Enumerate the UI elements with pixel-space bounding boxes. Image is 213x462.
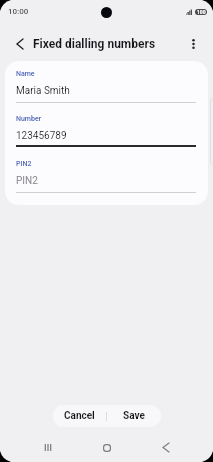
staticText: Save	[123, 410, 145, 422]
staticText: Cancel	[64, 410, 95, 422]
button[interactable]: Back	[151, 434, 180, 461]
button[interactable]: PIN2	[5, 160, 208, 198]
button[interactable]: Cancel	[53, 405, 106, 427]
staticText: 123456789	[16, 130, 67, 142]
button[interactable]: Navigate up	[6, 30, 33, 57]
button[interactable]: Number	[5, 115, 208, 151]
button[interactable]: More options	[180, 30, 207, 57]
staticText: PIN2	[16, 175, 38, 187]
staticText: Number	[16, 115, 42, 123]
button[interactable]: Home	[92, 434, 121, 461]
staticText: 100	[197, 9, 206, 15]
staticText: Maria Smith	[16, 85, 70, 97]
button[interactable]: Save	[107, 405, 161, 427]
staticText: 10:00	[8, 7, 29, 16]
staticText: PIN2	[16, 160, 32, 168]
staticText: Name	[16, 70, 35, 78]
button[interactable]: Recent apps	[33, 434, 62, 461]
staticText: Fixed dialling numbers	[33, 37, 156, 51]
button[interactable]: Name	[5, 70, 208, 108]
